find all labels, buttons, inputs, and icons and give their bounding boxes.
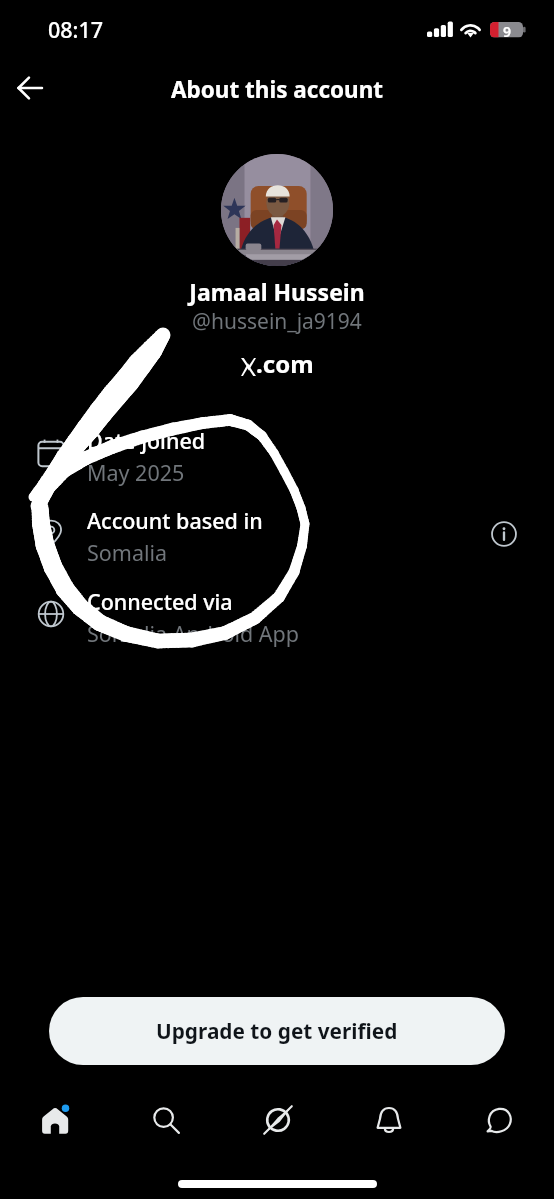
staticText: Upgrade to get verified	[156, 1017, 398, 1045]
staticText: Connected via	[87, 587, 233, 616]
button[interactable]: More info	[482, 512, 526, 556]
button[interactable]: Notifications	[361, 1092, 417, 1148]
staticText: May 2025	[87, 458, 185, 487]
staticText: About this account	[171, 74, 384, 105]
staticText: @hussein_ja9194	[0, 307, 554, 336]
staticText: .com	[256, 347, 314, 380]
staticText: Somalia	[87, 538, 168, 567]
button[interactable]: Connected via	[0, 587, 554, 648]
button[interactable]: Home	[27, 1092, 83, 1148]
button[interactable]: Date joined	[0, 426, 554, 487]
button[interactable]: Account based in	[0, 506, 554, 567]
staticText: Jamaal Hussein	[0, 276, 554, 307]
staticText: 08:17	[48, 15, 104, 44]
button[interactable]: Search	[138, 1092, 194, 1148]
button[interactable]: Back	[8, 66, 52, 110]
staticText: Account based in	[87, 506, 263, 535]
button[interactable]: Grok	[250, 1092, 306, 1148]
button[interactable]: Messages	[471, 1092, 527, 1148]
staticText: Somalia Android App	[87, 619, 299, 648]
staticText: Date joined	[87, 426, 206, 455]
button[interactable]: Upgrade to get verified	[49, 997, 505, 1065]
staticText: 9	[503, 22, 512, 41]
